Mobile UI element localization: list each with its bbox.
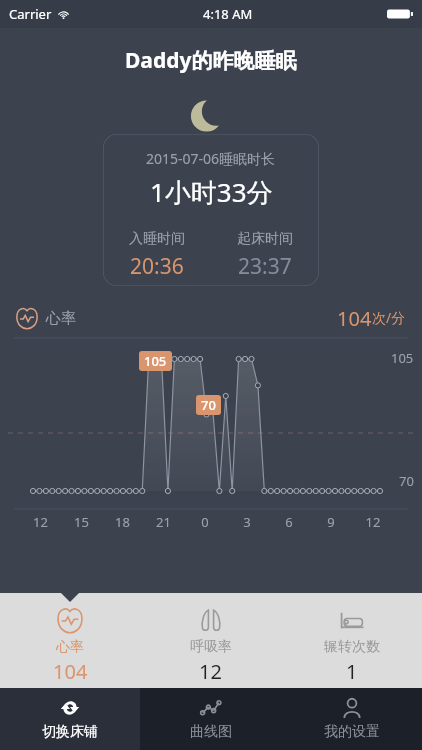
- staticText: 70: [399, 472, 414, 490]
- staticText: 次/分: [372, 308, 406, 327]
- button[interactable]: 切换床铺: [0, 688, 140, 750]
- button[interactable]: 心率: [16, 298, 406, 338]
- staticText: 105: [391, 349, 414, 367]
- staticText: 1: [346, 658, 358, 685]
- staticText: 21: [143, 513, 184, 531]
- staticText: 心率: [56, 638, 84, 656]
- staticText: 105: [144, 352, 167, 370]
- button[interactable]: 我的设置: [281, 688, 422, 750]
- staticText: Carrier: [9, 5, 52, 23]
- staticText: 6: [268, 513, 310, 531]
- staticText: 12: [199, 658, 222, 685]
- staticText: 心率: [46, 309, 76, 328]
- staticText: 3: [226, 513, 268, 531]
- staticText: 9: [310, 513, 352, 531]
- staticText: 切换床铺: [42, 723, 98, 741]
- staticText: 104: [337, 305, 372, 332]
- staticText: 辗转次数: [324, 638, 380, 656]
- button[interactable]: Turns: [281, 593, 422, 688]
- button[interactable]: Heart rate: [0, 593, 140, 688]
- button[interactable]: 2015-07-06睡眠时长: [103, 134, 319, 286]
- staticText: 15: [61, 513, 102, 531]
- staticText: 曲线图: [190, 723, 232, 741]
- staticText: 入睡时间: [129, 230, 185, 248]
- staticText: 0: [184, 513, 226, 531]
- staticText: 12: [352, 513, 394, 531]
- staticText: 呼吸率: [190, 638, 232, 656]
- staticText: 20:36: [130, 252, 184, 281]
- staticText: 2015-07-06睡眠时长: [146, 149, 276, 168]
- staticText: 我的设置: [324, 723, 380, 741]
- button[interactable]: Respiration: [140, 593, 281, 688]
- staticText: 23:37: [238, 252, 292, 281]
- staticText: 70: [201, 396, 216, 414]
- staticText: 18: [102, 513, 143, 531]
- staticText: 4:18 AM: [203, 5, 253, 23]
- staticText: Daddy的昨晚睡眠: [125, 46, 297, 75]
- staticText: 起床时间: [237, 230, 293, 248]
- button[interactable]: 曲线图: [140, 688, 281, 750]
- staticText: 1小时33分: [150, 174, 273, 210]
- staticText: 12: [20, 513, 61, 531]
- staticText: 104: [53, 658, 88, 685]
